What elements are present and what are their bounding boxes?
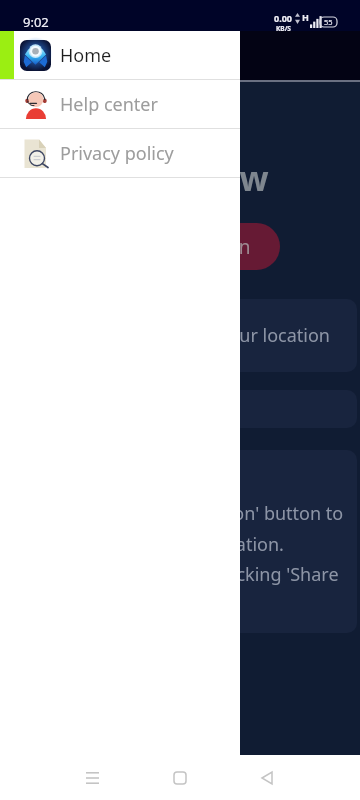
staticText: H — [302, 11, 309, 23]
staticText: 9:02 — [23, 13, 49, 31]
staticText: Share Your Location Now — [36, 113, 269, 201]
button[interactable]: Home — [0, 31, 240, 79]
staticText: KB/S — [276, 24, 291, 33]
staticText: 0.00 — [274, 12, 292, 24]
button[interactable]: Recents — [72, 755, 112, 800]
staticText: Tap the button to get your location — [36, 323, 330, 348]
staticText: 55 — [324, 17, 333, 27]
staticText: Privacy policy — [60, 141, 174, 166]
staticText: Help center — [60, 92, 158, 117]
button[interactable]: Share Link — [3, 390, 357, 428]
button[interactable]: Privacy policy — [0, 129, 240, 177]
staticText: 1. Click on 'Share Location' button to g… — [36, 501, 344, 616]
button[interactable]: Share Current Location — [16, 223, 280, 270]
button[interactable]: Help center — [0, 80, 240, 128]
button[interactable]: Back — [247, 755, 287, 800]
staticText: Share Current Location — [45, 234, 251, 260]
button[interactable]: Home — [160, 755, 200, 800]
staticText: Share Location — [64, 42, 204, 69]
staticText: Home — [60, 43, 112, 68]
button[interactable]: Open navigation drawer — [10, 36, 50, 76]
button[interactable]: Tap the button to get your location — [3, 299, 357, 372]
